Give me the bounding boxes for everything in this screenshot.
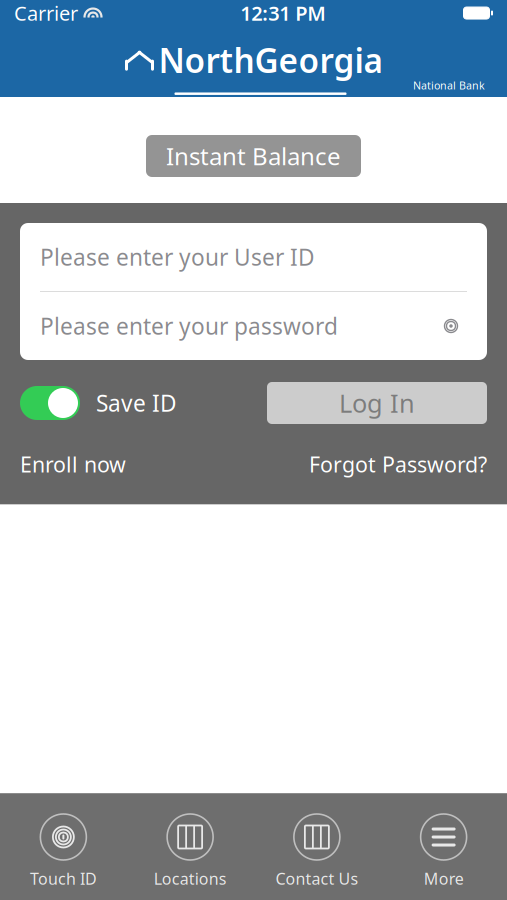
button[interactable]: Show password [435,313,467,339]
staticText: Contact Us [275,868,358,889]
staticText: NorthGeorgia [158,38,383,82]
button[interactable]: More [380,808,507,895]
staticText: 12:31 PM [240,0,326,26]
staticText: Save ID [96,388,177,418]
button[interactable]: Touch ID [0,808,127,895]
button[interactable]: Contact Us [253,808,380,895]
button[interactable]: Forgot Password? [309,450,487,478]
staticText: Carrier [14,0,78,26]
staticText: Forgot Password? [309,450,487,478]
button[interactable]: Locations [127,808,254,895]
staticText: Log In [339,386,415,420]
staticText: Locations [154,868,227,889]
staticText: National Bank [413,78,485,92]
staticText: Enroll now [20,450,126,478]
staticText: Please enter your User ID [40,242,315,272]
staticText: Instant Balance [166,140,341,172]
button[interactable]: Log In [267,382,487,424]
staticText: More [424,868,464,889]
button[interactable]: Instant Balance [146,135,361,177]
staticText: Please enter your password [40,311,338,341]
button[interactable]: Save ID [20,386,177,420]
button[interactable]: Enroll now [20,450,126,478]
staticText: Touch ID [30,868,97,889]
